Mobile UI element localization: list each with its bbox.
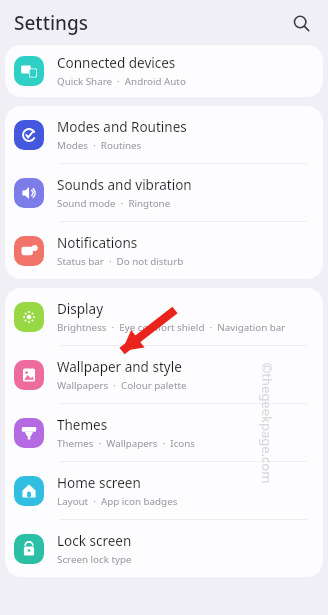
staticText: Connected devices: [57, 54, 176, 72]
staticText: Brightness · Eye comfort shield · Naviga…: [57, 321, 286, 334]
staticText: Quick Share · Android Auto: [57, 75, 186, 88]
staticText: Layout · App icon badges: [57, 495, 178, 508]
staticText: Themes: [57, 416, 108, 434]
staticText: Modes and Routines: [57, 118, 187, 136]
button[interactable]: Search: [286, 8, 316, 38]
staticText: Sounds and vibration: [57, 176, 192, 194]
staticText: Lock screen: [57, 532, 132, 550]
staticText: Display: [57, 300, 104, 318]
button[interactable]: Wallpaper and style: [5, 346, 323, 403]
button[interactable]: Sounds and vibration: [5, 164, 323, 221]
staticText: Themes · Wallpapers · Icons: [57, 437, 196, 450]
button[interactable]: Display: [5, 288, 323, 345]
button[interactable]: Notifications: [5, 222, 323, 279]
staticText: Wallpaper and style: [57, 358, 182, 376]
button[interactable]: Themes: [5, 404, 323, 461]
staticText: Modes · Routines: [57, 139, 142, 152]
staticText: Screen lock type: [57, 553, 132, 566]
staticText: Wallpapers · Colour palette: [57, 379, 187, 392]
staticText: Status bar · Do not disturb: [57, 255, 184, 268]
staticText: Settings: [14, 10, 88, 36]
staticText: Notifications: [57, 234, 138, 252]
button[interactable]: Connected devices: [5, 45, 323, 97]
button[interactable]: Modes and Routines: [5, 106, 323, 163]
button[interactable]: Home screen: [5, 462, 323, 519]
staticText: Home screen: [57, 474, 141, 492]
button[interactable]: Lock screen: [5, 520, 323, 577]
staticText: ©thegeekpage.com: [257, 362, 275, 483]
staticText: Sound mode · Ringtone: [57, 197, 171, 210]
